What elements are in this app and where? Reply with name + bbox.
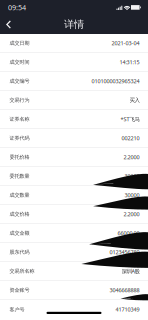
staticText: 客户号 [9,306,24,313]
staticText: 证券名称 [9,116,29,122]
staticText: 0123456789 [109,248,139,256]
staticText: 09:54 [8,3,26,12]
staticText: 成交金额 [9,230,29,236]
staticText: 2.2000 [123,210,139,218]
staticText: 成交日期 [9,40,29,46]
staticText: 证券代码 [9,135,29,141]
staticText: 资金账号 [9,287,29,293]
staticText: 2.2000 [123,153,139,161]
staticText: 2021-03-04 [111,39,139,47]
staticText: 成交数量 [9,192,29,198]
staticText: 14:31:15 [119,58,139,66]
staticText: 委托数量 [9,173,29,179]
staticText: 买入 [129,97,139,104]
staticText: 66000.00 [117,229,139,237]
staticText: 委托价格 [9,154,29,160]
staticText: 交易所名称 [9,268,34,274]
staticText: 股东代码 [9,249,29,255]
staticText: 详情 [64,18,84,31]
button[interactable]: Back [0,15,18,34]
staticText: 3046668888 [109,286,139,294]
staticText: 成交时间 [9,59,29,65]
staticText: 30000 [124,191,139,199]
staticText: 成交价格 [9,211,29,217]
staticText: 交易行为 [9,97,29,103]
staticText: 0101000032965324 [91,77,139,85]
staticText: 成交编号 [9,78,29,84]
staticText: *ST飞马 [120,115,139,123]
staticText: 41710349 [115,306,139,313]
staticText: 30000 [124,172,139,180]
staticText: 深圳A股 [121,267,139,275]
staticText: 002210 [121,134,139,142]
